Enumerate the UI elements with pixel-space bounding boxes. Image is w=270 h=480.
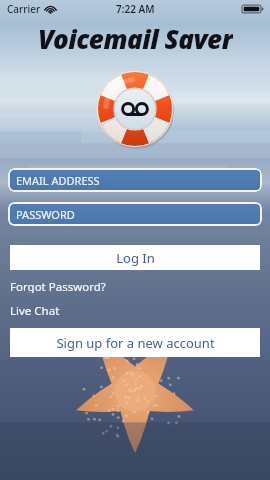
button[interactable]: Log In bbox=[10, 245, 260, 270]
staticText: Log In bbox=[116, 249, 155, 267]
staticText: PASSWORD bbox=[16, 207, 75, 222]
staticText: Voicemail Saver bbox=[38, 21, 233, 54]
staticText: Forgot Password? bbox=[10, 279, 106, 293]
staticText: EMAIL ADDRESS bbox=[16, 173, 100, 188]
staticText: Sign up for a new account bbox=[56, 334, 215, 352]
button[interactable]: Forgot Password? bbox=[0, 279, 270, 293]
button[interactable]: Live Chat bbox=[0, 303, 270, 317]
button[interactable]: PASSWORD bbox=[8, 202, 262, 226]
staticText: Live Chat bbox=[10, 303, 60, 317]
button[interactable]: EMAIL ADDRESS bbox=[8, 168, 262, 192]
staticText: Carrier bbox=[7, 2, 41, 16]
button[interactable]: Sign up for a new account bbox=[10, 328, 260, 357]
staticText: 7:22 AM bbox=[116, 2, 155, 16]
other: Voicemail Saver logo bbox=[97, 71, 173, 147]
